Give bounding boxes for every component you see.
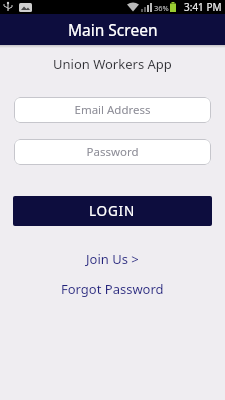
staticText: Password bbox=[86, 144, 139, 160]
staticText: Email Address bbox=[74, 102, 151, 118]
button[interactable]: Email Address bbox=[14, 97, 211, 123]
staticText: LOGIN bbox=[89, 202, 136, 220]
button[interactable]: Forgot Password bbox=[61, 280, 164, 298]
staticText: 3:41 PM bbox=[184, 0, 222, 14]
staticText: 36% bbox=[154, 3, 169, 13]
staticText: Main Screen bbox=[68, 19, 158, 40]
button[interactable]: Password bbox=[14, 139, 211, 165]
button[interactable]: LOGIN bbox=[13, 196, 212, 226]
button[interactable]: Join Us > bbox=[86, 250, 139, 268]
staticText: Union Workers App bbox=[53, 55, 172, 73]
